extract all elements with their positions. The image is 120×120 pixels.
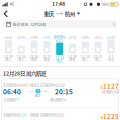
staticText: 1225 [103,112,119,120]
staticText: 12.29 [68,54,77,59]
staticText: 吉祥航空HO1121 [3,113,27,117]
button[interactable]: 东方航空MU5443 [2,79,118,108]
staticText: ¥ [101,115,103,120]
button[interactable]: 吉祥航空HO1121 [2,108,118,120]
staticText: ¥548 [30,36,38,40]
staticText: 1.1 [108,54,113,59]
staticText: 12.28 [55,56,64,60]
button[interactable]: ¥478 [66,31,79,63]
staticText: 12.30 [81,54,90,59]
staticText: 最低票价 [54,35,66,39]
button[interactable]: 低价日历 12月28日 [2,20,117,28]
button[interactable]: ¥541 [40,31,53,63]
staticText: 萧山国际T4 [50,97,66,102]
staticText: ¥548 [4,36,12,40]
staticText: 12.24 [4,54,13,59]
staticText: 周五 [44,58,50,62]
button[interactable]: 返回 [0,0,120,120]
staticText: 12.31 [94,54,103,59]
staticText: 1127 [103,81,119,91]
staticText: ¥521 [56,39,64,43]
button[interactable]: 最低票价 [53,31,66,63]
staticText: 转武汉 东方航空MU2152 [30,83,65,88]
staticText: ¥496 [81,36,89,40]
staticText: 周日 [69,58,75,62]
button[interactable]: ¥512 [92,31,104,63]
staticText: 06:40 [3,86,21,96]
button[interactable]: ¥470 [15,31,28,63]
staticText: ¥538 [107,36,115,40]
staticText: 12.27 [42,54,51,59]
staticText: ¥ [101,84,103,90]
staticText: ¥470 [17,36,25,40]
button[interactable]: ¥538 [104,31,117,63]
staticText: 周四 [31,58,37,62]
staticText: 12.26 [30,54,39,59]
button[interactable]: ¥496 [79,31,92,63]
staticText: 烟台 [34,93,40,98]
button[interactable]: 重庆 [44,10,80,17]
staticText: 元旦 [108,58,114,62]
staticText: 周六 [57,59,63,63]
staticText: 杭州 [65,10,75,17]
staticText: 12.25 [17,54,26,59]
staticText: 4G [10,2,14,6]
staticText: 周一 [82,58,88,62]
staticText: 周二 [95,58,101,62]
staticText: 东方航空MU5443 [3,83,28,88]
button[interactable]: ¥548 [2,31,15,63]
staticText: 98% [102,2,109,7]
staticText: 转西安 吉祥航空HO3325 [30,113,64,117]
staticText: 重庆 [44,10,54,17]
staticText: ¥512 [94,36,102,40]
staticText: 转 [36,89,39,93]
staticText: 12月28日 周六航班 [3,69,46,77]
button[interactable]: ¥548 [28,31,40,63]
staticText: 江北国际T3 [3,97,19,102]
staticText: 低价日历 12月28日 [12,21,46,27]
staticText: ¥541 [43,36,51,40]
staticText: 经济舱5.6折 [102,90,119,94]
staticText: 周二 [5,58,11,62]
staticText: ¥478 [68,36,76,40]
staticText: 17:48 [52,0,65,7]
staticText: 周三 [18,58,24,62]
staticText: 20:15 [55,86,73,96]
